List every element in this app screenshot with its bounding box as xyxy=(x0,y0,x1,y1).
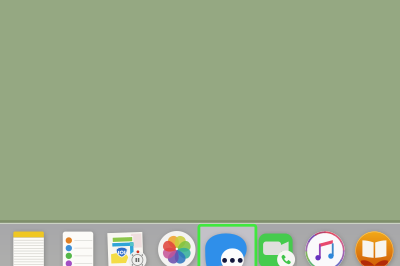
button[interactable]: iBooks xyxy=(355,231,393,266)
button[interactable]: FaceTime xyxy=(259,233,293,266)
button[interactable]: iTunes xyxy=(305,231,345,266)
button[interactable]: Maps xyxy=(108,231,147,266)
button[interactable]: Photos xyxy=(158,231,195,266)
button[interactable]: Notes xyxy=(13,231,44,266)
button[interactable]: Messages xyxy=(205,232,247,266)
button[interactable]: Reminders xyxy=(63,232,93,266)
